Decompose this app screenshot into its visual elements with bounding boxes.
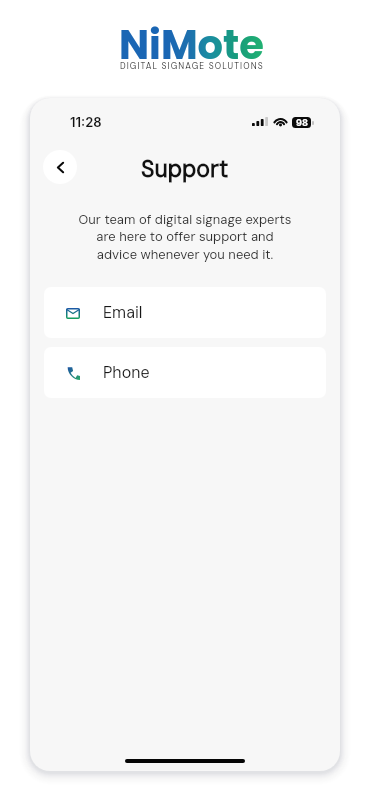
staticText: DIGITAL SIGNAGE SOLUTIONS <box>120 61 264 72</box>
button[interactable]: Phone <box>44 347 326 398</box>
staticText: NiMote <box>119 17 264 73</box>
staticText: Support <box>141 154 229 184</box>
staticText: Our team of digital signage experts are … <box>30 211 340 263</box>
staticText: Email <box>103 302 143 323</box>
staticText: Phone <box>103 362 150 383</box>
button[interactable]: Email <box>44 287 326 338</box>
staticText: 11:28 <box>70 114 102 130</box>
button[interactable]: Back <box>43 150 77 184</box>
staticText: 98 <box>296 117 308 128</box>
